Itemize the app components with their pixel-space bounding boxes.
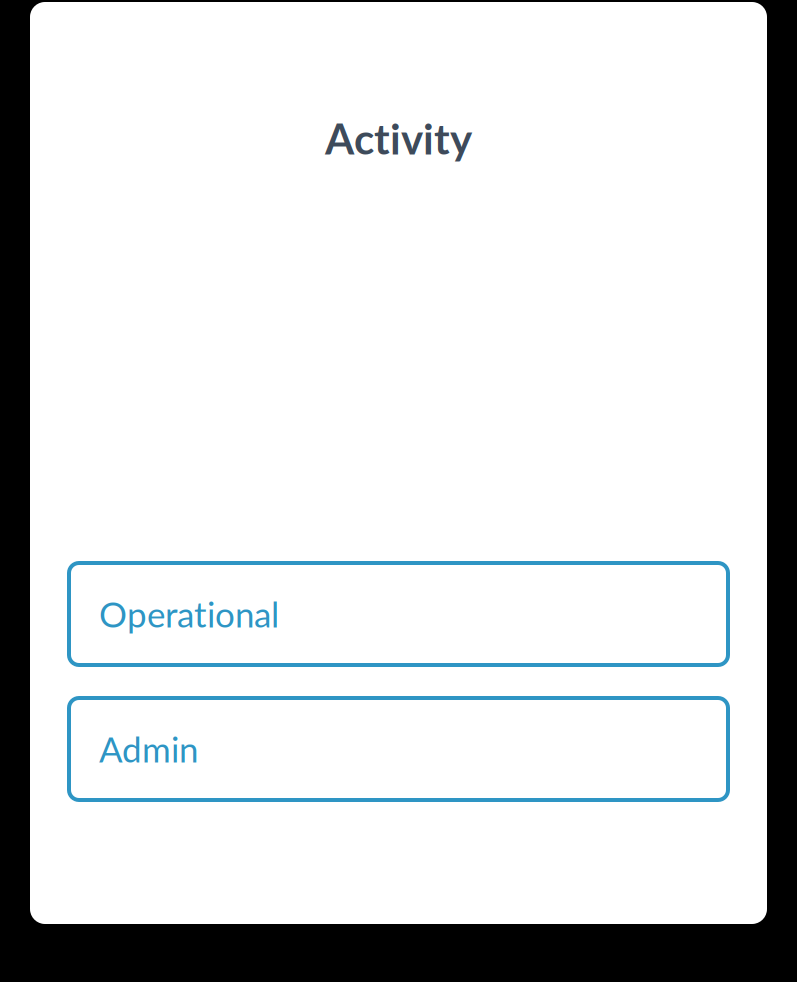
- staticText: Operational: [99, 593, 279, 635]
- staticText: Admin: [99, 728, 198, 770]
- button[interactable]: Admin: [69, 698, 728, 800]
- staticText: Activity: [325, 113, 472, 164]
- button[interactable]: Operational: [69, 563, 728, 665]
